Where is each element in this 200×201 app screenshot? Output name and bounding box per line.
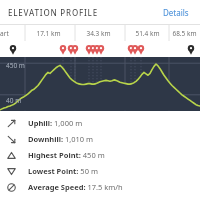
button[interactable]: Highest Point: 450 m — [0, 147, 200, 163]
button[interactable]: Elevation profile chart — [0, 57, 200, 111]
staticText: 40 m — [6, 96, 22, 105]
staticText: ELEVATION PROFILE — [8, 7, 98, 18]
staticText: 51.4 km — [135, 29, 160, 38]
staticText: Average Speed: 17.5 km/h — [28, 182, 123, 192]
button[interactable]: Details — [160, 4, 192, 21]
staticText: 34.3 km — [86, 29, 111, 38]
staticText: 17.1 km — [36, 29, 61, 38]
staticText: Lowest Point: 50 m — [28, 166, 98, 176]
button[interactable]: Average Speed: 17.5 km/h — [0, 179, 200, 195]
staticText: 450 m — [6, 61, 25, 70]
button[interactable]: Lowest Point: 50 m — [0, 163, 200, 179]
button[interactable]: Uphill: 1,000 m — [0, 115, 200, 131]
staticText: Downhill: 1,010 m — [28, 134, 94, 144]
staticText: 68.5 km — [172, 29, 197, 38]
other: Route waypoint markers — [0, 41, 200, 57]
staticText: Start — [0, 29, 9, 38]
staticText: Details — [163, 7, 189, 18]
staticText: Uphill: 1,000 m — [28, 118, 83, 128]
button[interactable]: Downhill: 1,010 m — [0, 131, 200, 147]
staticText: Highest Point: 450 m — [28, 150, 105, 160]
